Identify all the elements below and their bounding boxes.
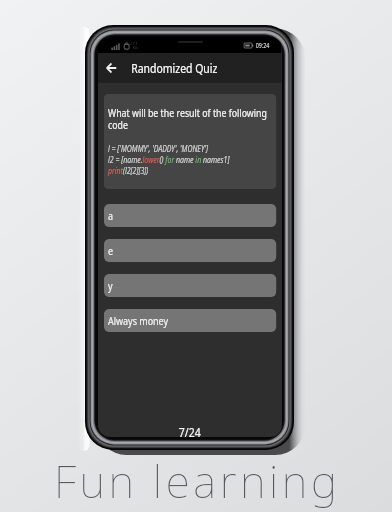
staticText: l2 = [name.lower() for name in names1] [108, 154, 230, 165]
staticText: l = ['MOMMY', 'DADDY', 'MONEY'] [108, 143, 208, 154]
staticText: 7.1 K/s [133, 41, 138, 50]
button[interactable]: e [104, 239, 276, 262]
staticText: e [108, 243, 114, 258]
staticText: Randomized Quiz [131, 60, 217, 77]
staticText: print(l2[2][3]) [108, 165, 149, 176]
staticText: a [108, 208, 114, 223]
staticText: What will be the result of the following… [108, 106, 272, 132]
staticText: Fun learning [54, 450, 341, 511]
staticText: 2 [130, 41, 132, 46]
button[interactable]: Always money [104, 309, 276, 332]
staticText: y [108, 278, 113, 293]
button[interactable]: a [104, 204, 276, 227]
staticText: 7/24 [98, 424, 281, 437]
staticText: 09:24 [256, 41, 270, 50]
button[interactable]: y [104, 274, 276, 297]
button[interactable]: Back [100, 53, 123, 83]
staticText: Always money [108, 313, 169, 328]
